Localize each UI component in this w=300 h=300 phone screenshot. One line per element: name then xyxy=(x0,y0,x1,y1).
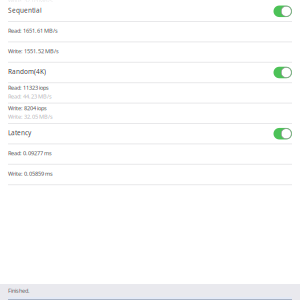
staticText: Latency xyxy=(8,128,31,137)
staticText: Write: 0.05859 ms xyxy=(8,170,53,177)
staticText: Random(4K) xyxy=(8,67,46,76)
button[interactable]: Latency xyxy=(0,124,300,143)
staticText: Read: 11323 iops xyxy=(8,84,49,91)
staticText: Read: 44.23 MB/s xyxy=(8,92,52,100)
staticText: Write: 32.05 MB/s xyxy=(8,113,53,120)
staticText: Sequential xyxy=(8,6,42,15)
button[interactable]: Random(4K) xyxy=(0,63,300,82)
staticText: Write: 8204 iops xyxy=(8,104,47,112)
button[interactable]: Sequential xyxy=(0,2,300,21)
staticText: Read: 0.09277 ms xyxy=(8,149,52,157)
staticText: Write: 1551.52 MB/s xyxy=(8,47,59,55)
staticText: Write: 32.05 MB/s xyxy=(8,0,53,4)
staticText: Finished. xyxy=(8,287,30,294)
staticText: Read: 1651.61 MB/s xyxy=(8,27,58,34)
